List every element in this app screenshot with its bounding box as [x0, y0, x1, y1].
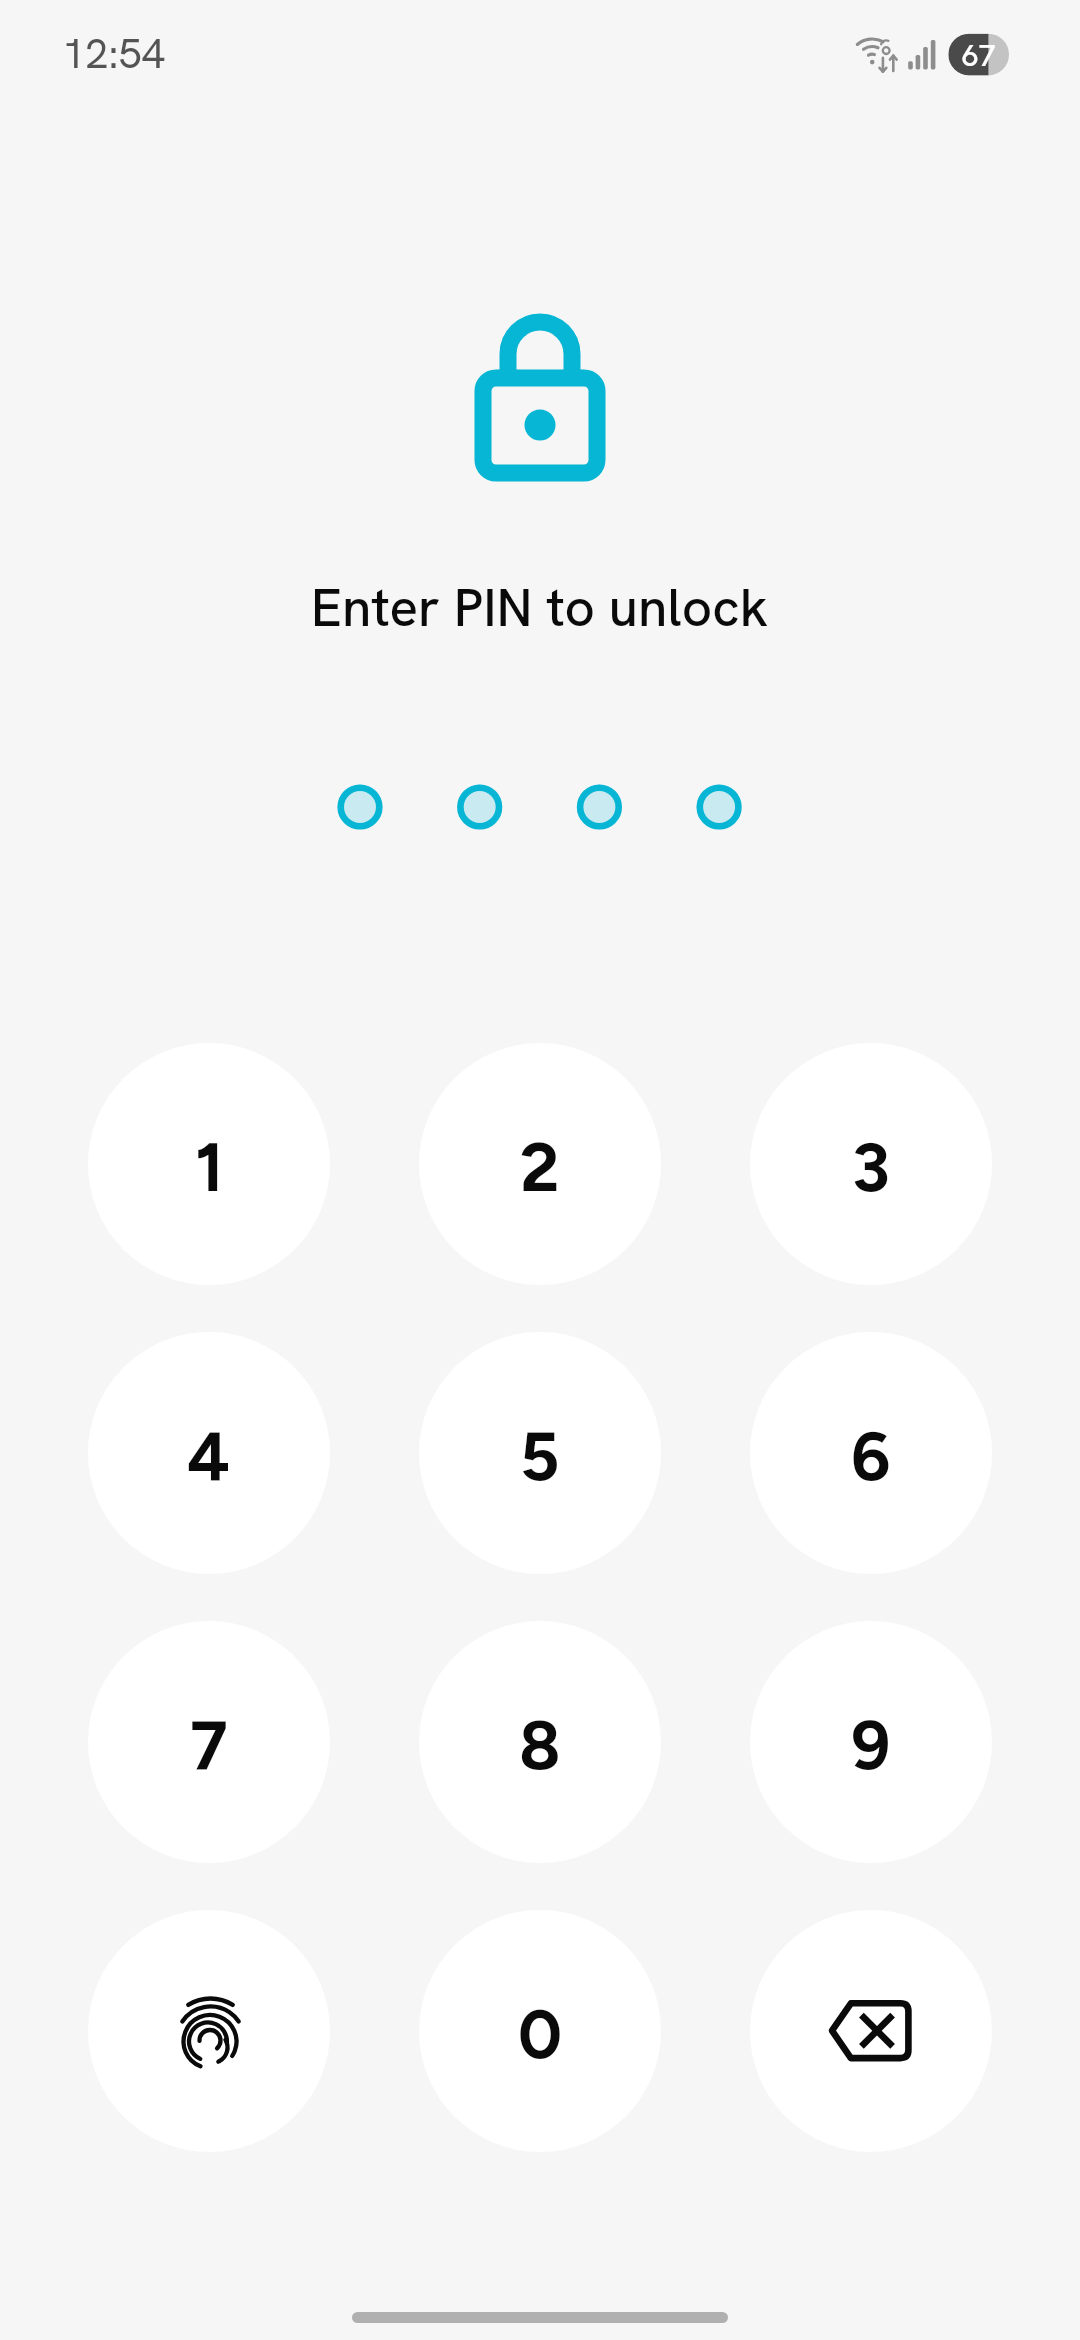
staticText: Enter PIN to unlock — [311, 573, 769, 642]
button[interactable]: Unlock with fingerprint — [88, 1910, 330, 2152]
staticText: 5 — [520, 1415, 560, 1497]
button[interactable]: 7 — [88, 1621, 330, 1863]
staticText: 4 — [187, 1415, 231, 1497]
button[interactable]: 0 — [419, 1910, 661, 2152]
button[interactable]: 6 — [750, 1332, 992, 1574]
button[interactable]: Delete — [750, 1910, 992, 2152]
staticText: 67 — [962, 36, 996, 75]
button[interactable]: 9 — [750, 1621, 992, 1863]
staticText: 6 — [851, 1415, 891, 1497]
staticText: 12:54 — [62, 26, 165, 80]
button[interactable]: 1 — [88, 1043, 330, 1285]
staticText: 7 — [190, 1704, 228, 1786]
button[interactable]: 8 — [419, 1621, 661, 1863]
staticText: 1 — [195, 1126, 224, 1208]
button[interactable]: 2 — [419, 1043, 661, 1285]
button[interactable]: 4 — [88, 1332, 330, 1574]
staticText: 2 — [520, 1126, 560, 1208]
staticText: 8 — [519, 1704, 561, 1786]
button[interactable]: 3 — [750, 1043, 992, 1285]
button[interactable]: 5 — [419, 1332, 661, 1574]
staticText: 9 — [851, 1704, 891, 1786]
staticText: 0 — [518, 1993, 563, 2075]
staticText: 3 — [852, 1126, 890, 1208]
